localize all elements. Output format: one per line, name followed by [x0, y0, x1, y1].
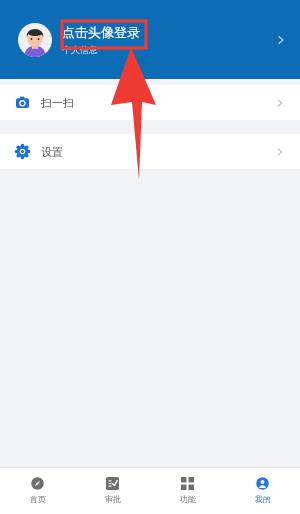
staticText: 首页: [30, 494, 46, 504]
other: 扫一扫: [16, 96, 29, 109]
staticText: 功能: [180, 494, 196, 504]
button[interactable]: 审批: [75, 467, 150, 514]
staticText: 点击头像登录: [62, 24, 140, 40]
staticText: 扫一扫: [41, 96, 74, 110]
staticText: 我的: [255, 494, 271, 504]
button[interactable]: 我的: [225, 467, 300, 514]
other: 审批: [106, 477, 119, 490]
button[interactable]: 首页: [0, 467, 75, 514]
other: 设置: [16, 145, 29, 158]
button[interactable]: 点击头像登录: [0, 0, 300, 79]
staticText: 设置: [41, 145, 63, 159]
button[interactable]: 设置: [0, 134, 300, 169]
other: 功能: [181, 477, 194, 490]
button[interactable]: 扫一扫: [0, 85, 300, 120]
other: 首页: [31, 477, 44, 490]
other: 我的: [256, 477, 269, 490]
staticText: 个人信息: [62, 44, 98, 55]
staticText: 审批: [105, 494, 121, 504]
button[interactable]: 功能: [150, 467, 225, 514]
